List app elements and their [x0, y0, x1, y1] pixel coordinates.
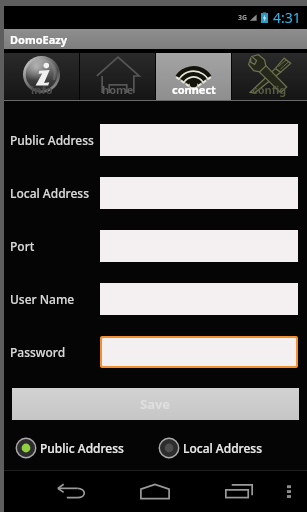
staticText: Save — [140, 395, 171, 413]
staticText: Public Address — [40, 440, 124, 456]
staticText: Local Address — [183, 440, 262, 456]
button[interactable]: config — [232, 53, 307, 100]
staticText: 4:31 — [273, 8, 301, 27]
button[interactable]: info — [4, 53, 79, 100]
staticText: connect — [172, 82, 216, 97]
button[interactable]: Recent apps — [197, 470, 281, 512]
button[interactable]: Save — [12, 388, 299, 420]
staticText: info — [31, 82, 53, 97]
button[interactable]: More options — [281, 470, 307, 512]
button[interactable]: home — [80, 53, 155, 100]
button[interactable]: Back — [29, 470, 113, 512]
staticText: Local Address — [10, 185, 100, 201]
staticText: home — [102, 82, 134, 97]
button[interactable]: connect — [156, 53, 231, 100]
button[interactable]: Public Address — [15, 437, 124, 459]
button[interactable]: Local Address — [158, 437, 262, 459]
button[interactable]: Home — [113, 470, 197, 512]
staticText: 3G — [238, 13, 248, 23]
staticText: Password — [10, 344, 100, 360]
staticText: User Name — [10, 291, 100, 307]
staticText: Port — [10, 238, 100, 254]
staticText: config — [252, 82, 287, 97]
staticText: Public Address — [10, 132, 100, 148]
staticText: DomoEazy — [10, 32, 67, 47]
